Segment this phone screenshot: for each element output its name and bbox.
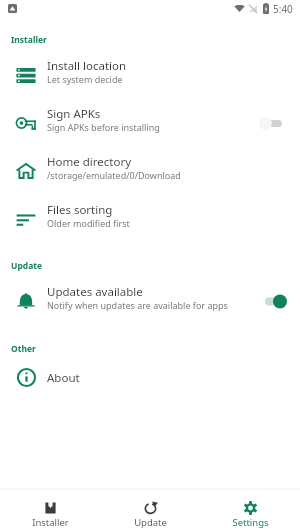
staticText: Updates available <box>47 284 143 300</box>
staticText: Let system decide <box>47 73 123 85</box>
staticText: Settings <box>232 516 269 529</box>
staticText: About <box>47 370 80 386</box>
staticText: Installer <box>32 516 69 529</box>
staticText: Other <box>11 343 36 355</box>
staticText: Update <box>134 516 167 529</box>
staticText: Notify when updates are available for ap… <box>47 299 228 311</box>
button[interactable] <box>264 294 287 309</box>
button[interactable]: Update <box>100 490 200 532</box>
staticText: Sign APKs <box>47 106 101 122</box>
button[interactable]: Sign APKs <box>0 99 300 147</box>
button[interactable]: Home directory <box>0 147 300 195</box>
button[interactable]: Installer <box>0 490 100 532</box>
button[interactable]: About <box>0 360 300 395</box>
button[interactable]: Install location <box>0 51 300 99</box>
button[interactable]: Updates available <box>0 277 300 325</box>
button[interactable]: Settings <box>200 490 300 532</box>
staticText: Install location <box>47 58 127 74</box>
staticText: Older modified first <box>47 217 130 229</box>
staticText: Files sorting <box>47 202 113 218</box>
staticText: Installer <box>11 34 47 46</box>
staticText: 5:40 <box>273 2 293 16</box>
staticText: /storage/emulated/0/Download <box>47 169 181 181</box>
staticText: Home directory <box>47 154 131 170</box>
staticText: Sign APKs before installing <box>47 121 160 133</box>
button[interactable] <box>259 116 282 130</box>
button[interactable]: Files sorting <box>0 195 300 243</box>
staticText: Update <box>11 260 43 272</box>
